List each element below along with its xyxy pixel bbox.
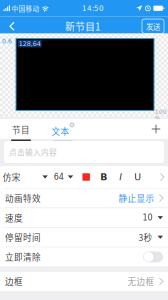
staticText: 中国移动 (12, 3, 40, 13)
staticText: 文本 (51, 125, 69, 137)
button[interactable]: Add (144, 119, 168, 139)
button[interactable]: I (112, 166, 129, 188)
button[interactable]: U (129, 166, 146, 188)
staticText: 10 (143, 213, 153, 222)
staticText: 100% (155, 108, 167, 121)
staticText: B (100, 172, 107, 182)
button[interactable]: 节目 (0, 119, 42, 139)
staticText: 仿宋 (3, 171, 21, 183)
button[interactable]: Text colour (77, 166, 95, 188)
button[interactable]: More text options (154, 166, 168, 188)
staticText: 点击输入内容 (9, 146, 57, 158)
button[interactable]: 动画特效 (0, 189, 168, 208)
button[interactable]: 速度 (0, 208, 168, 227)
staticText: 立即清除 (5, 251, 41, 263)
button[interactable]: 仿宋 (0, 166, 48, 188)
staticText: 0.6 (2, 37, 12, 45)
staticText: U (134, 172, 141, 182)
button[interactable]: 点击输入内容 (0, 139, 168, 163)
staticText: I (119, 172, 122, 182)
button[interactable]: Back (0, 16, 24, 36)
staticText: 无边框 (127, 275, 154, 288)
staticText: 静止显示 (118, 192, 154, 204)
button[interactable]: B (95, 166, 112, 188)
button[interactable]: 64 (48, 166, 77, 188)
staticText: 动画特效 (5, 192, 41, 204)
staticText: 速度 (5, 211, 23, 224)
staticText: 节目 (12, 124, 30, 136)
staticText: 停留时间 (5, 231, 41, 243)
button[interactable]: 边框 (0, 272, 168, 291)
staticText: 64 (54, 172, 64, 182)
button[interactable]: 文本 (42, 119, 84, 139)
button[interactable]: 发送 (142, 19, 168, 33)
staticText: 边框 (5, 275, 23, 288)
button[interactable]: 立即清除 (0, 247, 168, 266)
staticText: 14:50 (82, 4, 104, 12)
staticText: 新节目1 (65, 19, 101, 33)
staticText: 发送 (146, 21, 160, 32)
button[interactable]: 停留时间 (0, 228, 168, 247)
staticText: 3秒 (139, 231, 153, 243)
staticText: 128,64 (19, 40, 41, 47)
